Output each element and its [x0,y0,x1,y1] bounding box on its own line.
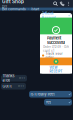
staticText: Got it [2,84,11,88]
staticText: Bot commands · /start [2,7,39,11]
staticText: Is it really free? [30,92,55,96]
staticText: Official Account [42,11,56,20]
staticText: Thanks a lot! [2,74,14,83]
staticText: 17:22 [18,85,25,88]
button[interactable]: Bot commands · /start [0,7,73,10]
staticText: 17:22 [19,77,26,80]
button[interactable]: Call [59,0,65,7]
staticText: Yes [45,100,51,104]
button[interactable]: Search [52,0,59,7]
button[interactable]: More options [65,0,72,7]
staticText: Payment successful [47,36,65,45]
staticText: Track your order [45,52,62,59]
staticText: bot [2,4,7,9]
staticText: VIEW RECEIPT [49,66,62,73]
staticText: Order #1249 · Gift card x1 [43,45,69,52]
staticText: Gift Shop [2,0,24,4]
